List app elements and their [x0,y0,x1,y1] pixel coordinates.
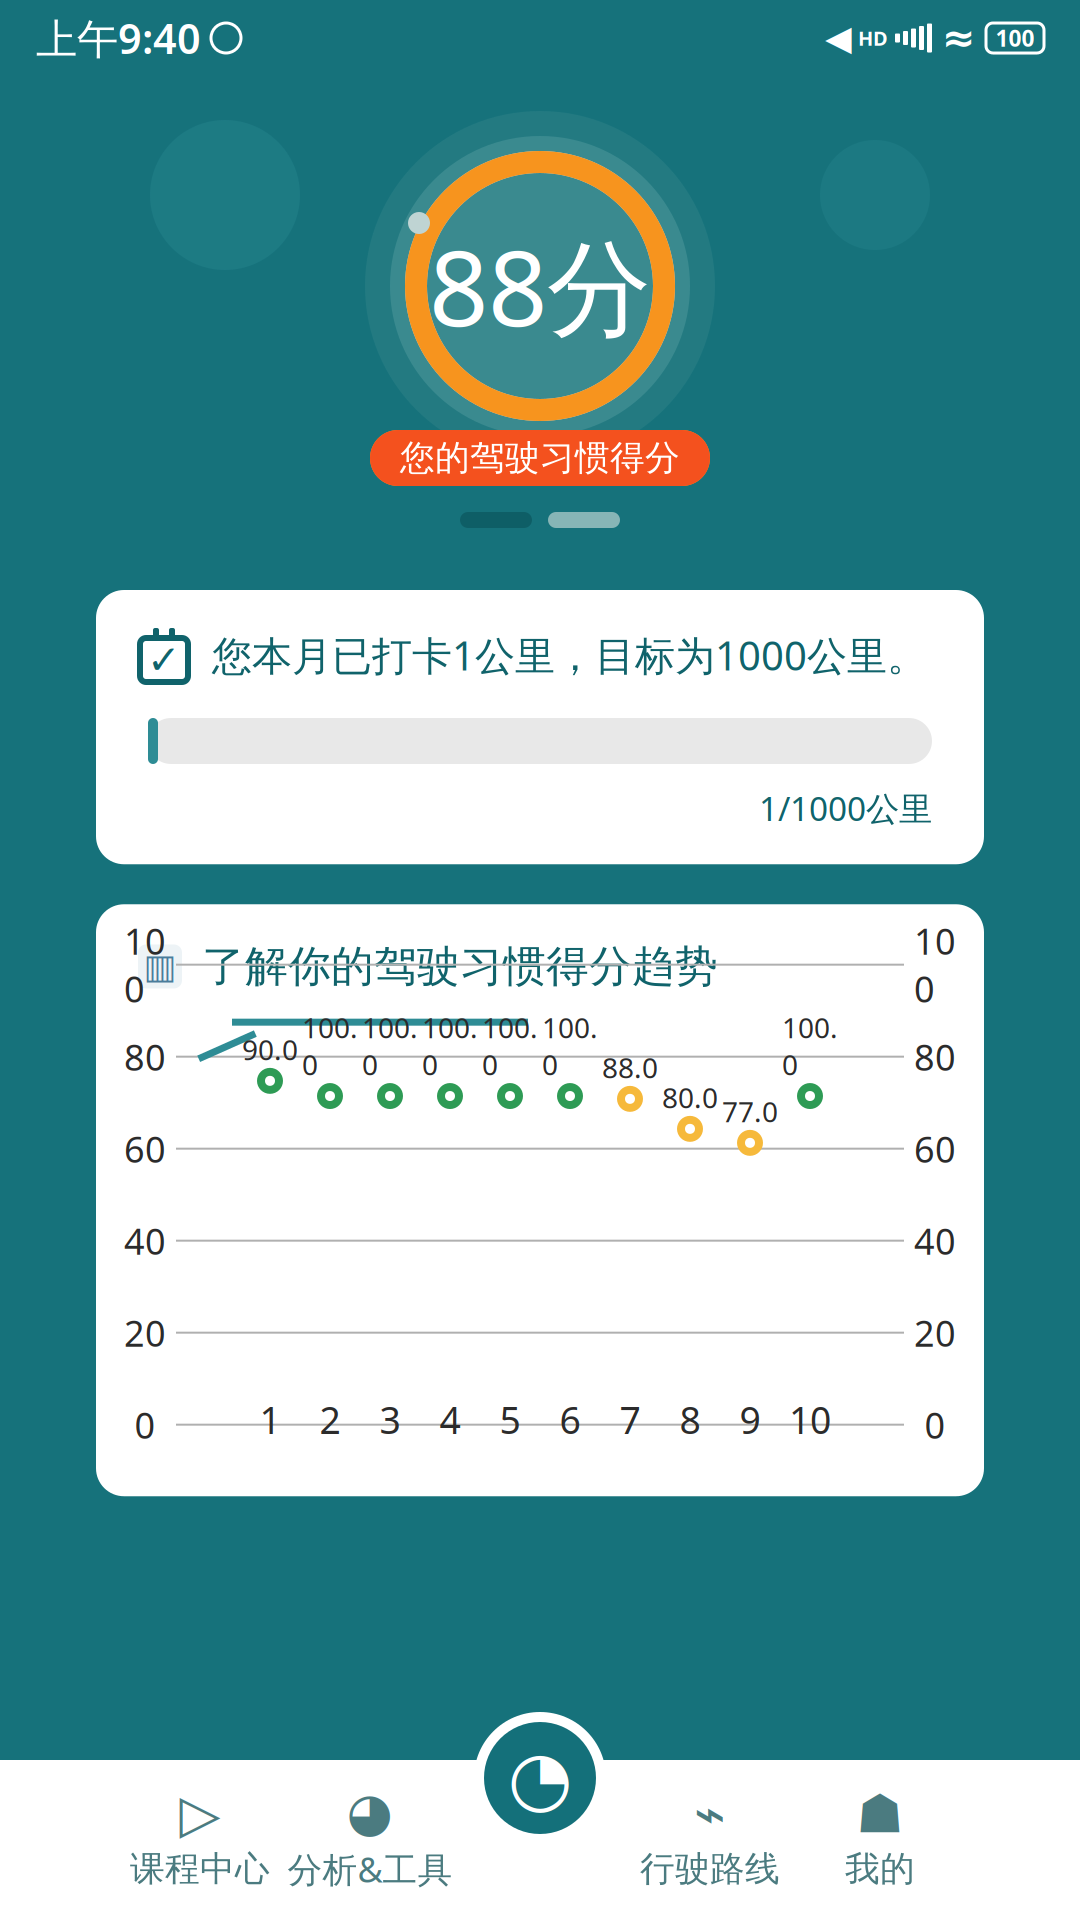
button[interactable]: ▷ [115,1780,285,1900]
staticText: 100 [995,23,1034,53]
staticText: 我的 [845,1848,915,1890]
staticText: 60 [124,1125,166,1173]
staticText: 80.0 [662,1079,718,1116]
staticText: 0 [924,1401,945,1449]
staticText: 9 [739,1395,760,1444]
staticText: ▷ [179,1783,220,1844]
staticText: ◔ [507,1736,572,1820]
staticText: 2 [319,1395,340,1444]
staticText: 60 [914,1125,956,1173]
button[interactable]: 您的驾驶习惯得分 [370,430,710,486]
staticText: 0 [134,1401,155,1449]
staticText: 分析&工具 [287,1846,452,1892]
staticText: ◀ [825,18,852,58]
staticText: 课程中心 [130,1848,270,1890]
staticText: 8 [679,1395,700,1444]
staticText: 100.0 [302,1009,358,1083]
staticText: 10 [789,1395,831,1444]
staticText: 您的驾驶习惯得分 [400,437,680,479]
staticText: 上午9:40 [36,11,201,65]
staticText: 90.0 [242,1031,298,1068]
staticText: 了解你的驾驶习惯得分趋势 [202,940,718,993]
button[interactable]: 开始行程 [474,1712,606,1844]
staticText: 1 [259,1395,280,1444]
staticText: 7 [619,1395,640,1444]
staticText: ≈ [942,15,976,61]
staticText: 77.0 [722,1093,778,1130]
staticText: 100.0 [362,1009,418,1083]
staticText: 6 [559,1395,580,1444]
staticText: 100.0 [482,1009,538,1083]
staticText: HD [858,25,888,51]
staticText: 88.0 [602,1049,658,1086]
button[interactable]: ☗ [795,1780,965,1900]
staticText: 40 [914,1217,956,1265]
staticText: 100 [914,917,956,1012]
staticText: 1/1000公里 [759,786,932,830]
staticText: 100.0 [542,1009,598,1083]
staticText: 100.0 [782,1009,838,1083]
staticText: ◕ [346,1782,393,1842]
staticText: ✓ [147,637,181,683]
staticText: 4 [439,1395,460,1444]
staticText: 20 [124,1309,166,1357]
staticText: 80 [914,1033,956,1081]
staticText: 3 [379,1395,400,1444]
button[interactable]: ◕ [285,1780,455,1900]
staticText: ▥ [143,947,176,986]
staticText: 行驶路线 [640,1848,780,1890]
staticText: 80 [124,1033,166,1081]
staticText: 5 [499,1395,520,1444]
staticText: 88分 [429,217,651,355]
staticText: 100 [124,917,166,1012]
staticText: 您本月已打卡1公里，目标为1000公里。 [212,628,927,681]
staticText: ☗ [856,1783,904,1844]
staticText: 40 [124,1217,166,1265]
staticText: 100.0 [422,1009,478,1083]
staticText: ⌁ [694,1783,726,1844]
button[interactable]: ⌁ [625,1780,795,1900]
staticText: 20 [914,1309,956,1357]
